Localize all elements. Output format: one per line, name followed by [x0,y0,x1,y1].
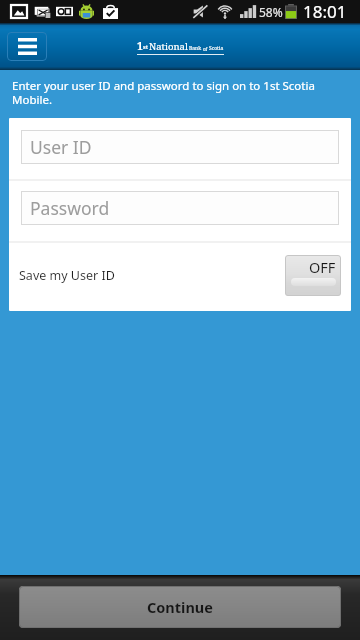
staticText: National [149,40,188,53]
staticText: Save my User ID [19,267,115,284]
staticText: st [143,43,148,50]
staticText: 18:01 [303,0,347,23]
staticText: Enter your user ID and password to sign … [12,78,346,107]
button[interactable]: Open navigation menu [7,32,47,61]
staticText: 58% [259,4,283,20]
staticText: Password [30,196,110,220]
staticText: 1 [137,39,143,53]
staticText: User ID [30,135,92,159]
staticText: Continue [147,597,213,617]
staticText: Bank [189,45,202,52]
staticText: Scotia [209,45,224,52]
staticText: of [203,46,208,52]
staticText: OFF [309,257,336,277]
button[interactable]: Continue [19,586,341,628]
button[interactable]: Save my User ID toggle, off [285,255,341,296]
button[interactable]: Password [21,191,339,225]
button[interactable]: User ID [21,130,339,164]
